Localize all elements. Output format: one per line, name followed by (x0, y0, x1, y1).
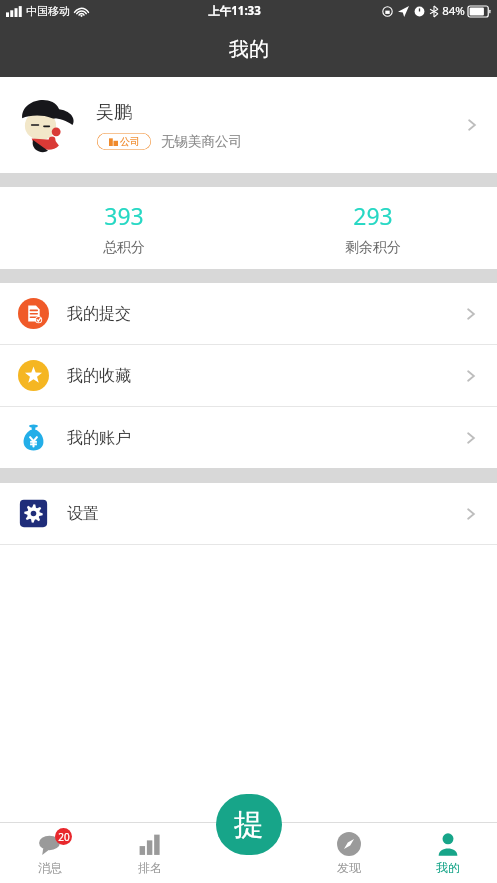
staticText: 我的提交 (67, 304, 131, 324)
staticText: 20 (58, 830, 70, 844)
button[interactable]: 设置 (0, 483, 497, 544)
button[interactable]: 排名 (100, 822, 200, 883)
staticText: 293 (353, 200, 393, 231)
staticText: 上午11:33 (208, 3, 261, 19)
staticText: 我的收藏 (67, 366, 131, 386)
staticText: 提 (234, 806, 264, 844)
button[interactable]: 我的收藏 (0, 345, 497, 406)
staticText: 中国移动 (26, 4, 70, 18)
button[interactable]: 我的提交 (0, 283, 497, 344)
staticText: 公司 (120, 135, 140, 148)
staticText: 设置 (67, 504, 99, 524)
staticText: 我的 (229, 37, 269, 62)
staticText: 排名 (138, 860, 162, 875)
staticText: 剩余积分 (345, 239, 401, 257)
button[interactable]: 我的账户 (0, 407, 497, 468)
button[interactable]: 我的 (398, 822, 497, 883)
staticText: 消息 (38, 860, 62, 875)
button[interactable]: 20 (0, 822, 100, 883)
staticText: 总积分 (103, 239, 145, 257)
staticText: 我的 (436, 860, 460, 875)
staticText: 84% (442, 3, 465, 19)
button[interactable]: 发现 (299, 822, 398, 883)
button[interactable]: 393 (0, 187, 248, 269)
button[interactable]: 提交 (216, 794, 282, 855)
button[interactable]: 293 (248, 187, 497, 269)
staticText: 吴鹏 (96, 101, 132, 124)
button[interactable]: 吴鹏 (0, 77, 497, 173)
staticText: 发现 (337, 860, 361, 875)
staticText: 无锡美商公司 (161, 133, 242, 150)
staticText: 393 (104, 200, 144, 231)
staticText: 我的账户 (67, 428, 131, 448)
